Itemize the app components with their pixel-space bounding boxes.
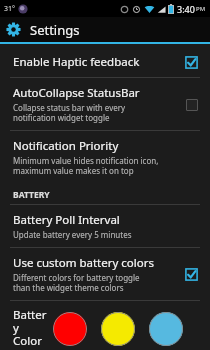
button[interactable]: Blue battery color (149, 312, 183, 346)
button[interactable]: Unchecked (184, 97, 199, 112)
staticText: Enable Haptic feedback (13, 54, 140, 70)
button[interactable]: Checked (184, 55, 199, 70)
other: Settings (6, 22, 21, 37)
staticText: PM (196, 5, 206, 13)
staticText: Battery Colors (13, 307, 47, 350)
staticText: Different colors for battery toggle than… (13, 272, 140, 293)
button[interactable]: Battery Colors (0, 301, 210, 350)
staticText: BATTERY (13, 189, 50, 201)
staticText: Minimum value hides notification icon, m… (13, 155, 159, 176)
staticText: 3:40 (177, 3, 195, 15)
button[interactable]: Enable Haptic feedback (0, 47, 210, 77)
staticText: Battery Poll Interval (13, 212, 120, 228)
staticText: Update battery every 5 minutes (13, 229, 132, 240)
button[interactable]: Battery Poll Interval (0, 205, 210, 247)
staticText: Notification Priority (13, 138, 119, 154)
staticText: Use custom battery colors (13, 255, 154, 271)
button[interactable]: Yellow battery color (101, 312, 135, 346)
staticText: AutoCollapse StatusBar (13, 85, 140, 101)
button[interactable]: Checked (184, 267, 199, 282)
button[interactable]: Red battery color (53, 312, 87, 346)
staticText: Settings (30, 21, 80, 39)
button[interactable]: Use custom battery colors (0, 248, 210, 300)
button[interactable]: Notification Priority (0, 131, 210, 183)
button[interactable]: AutoCollapse StatusBar (0, 78, 210, 130)
staticText: Collapse status bar with every notificat… (13, 102, 126, 123)
button[interactable]: Settings (0, 17, 210, 42)
staticText: 31° (4, 4, 15, 14)
